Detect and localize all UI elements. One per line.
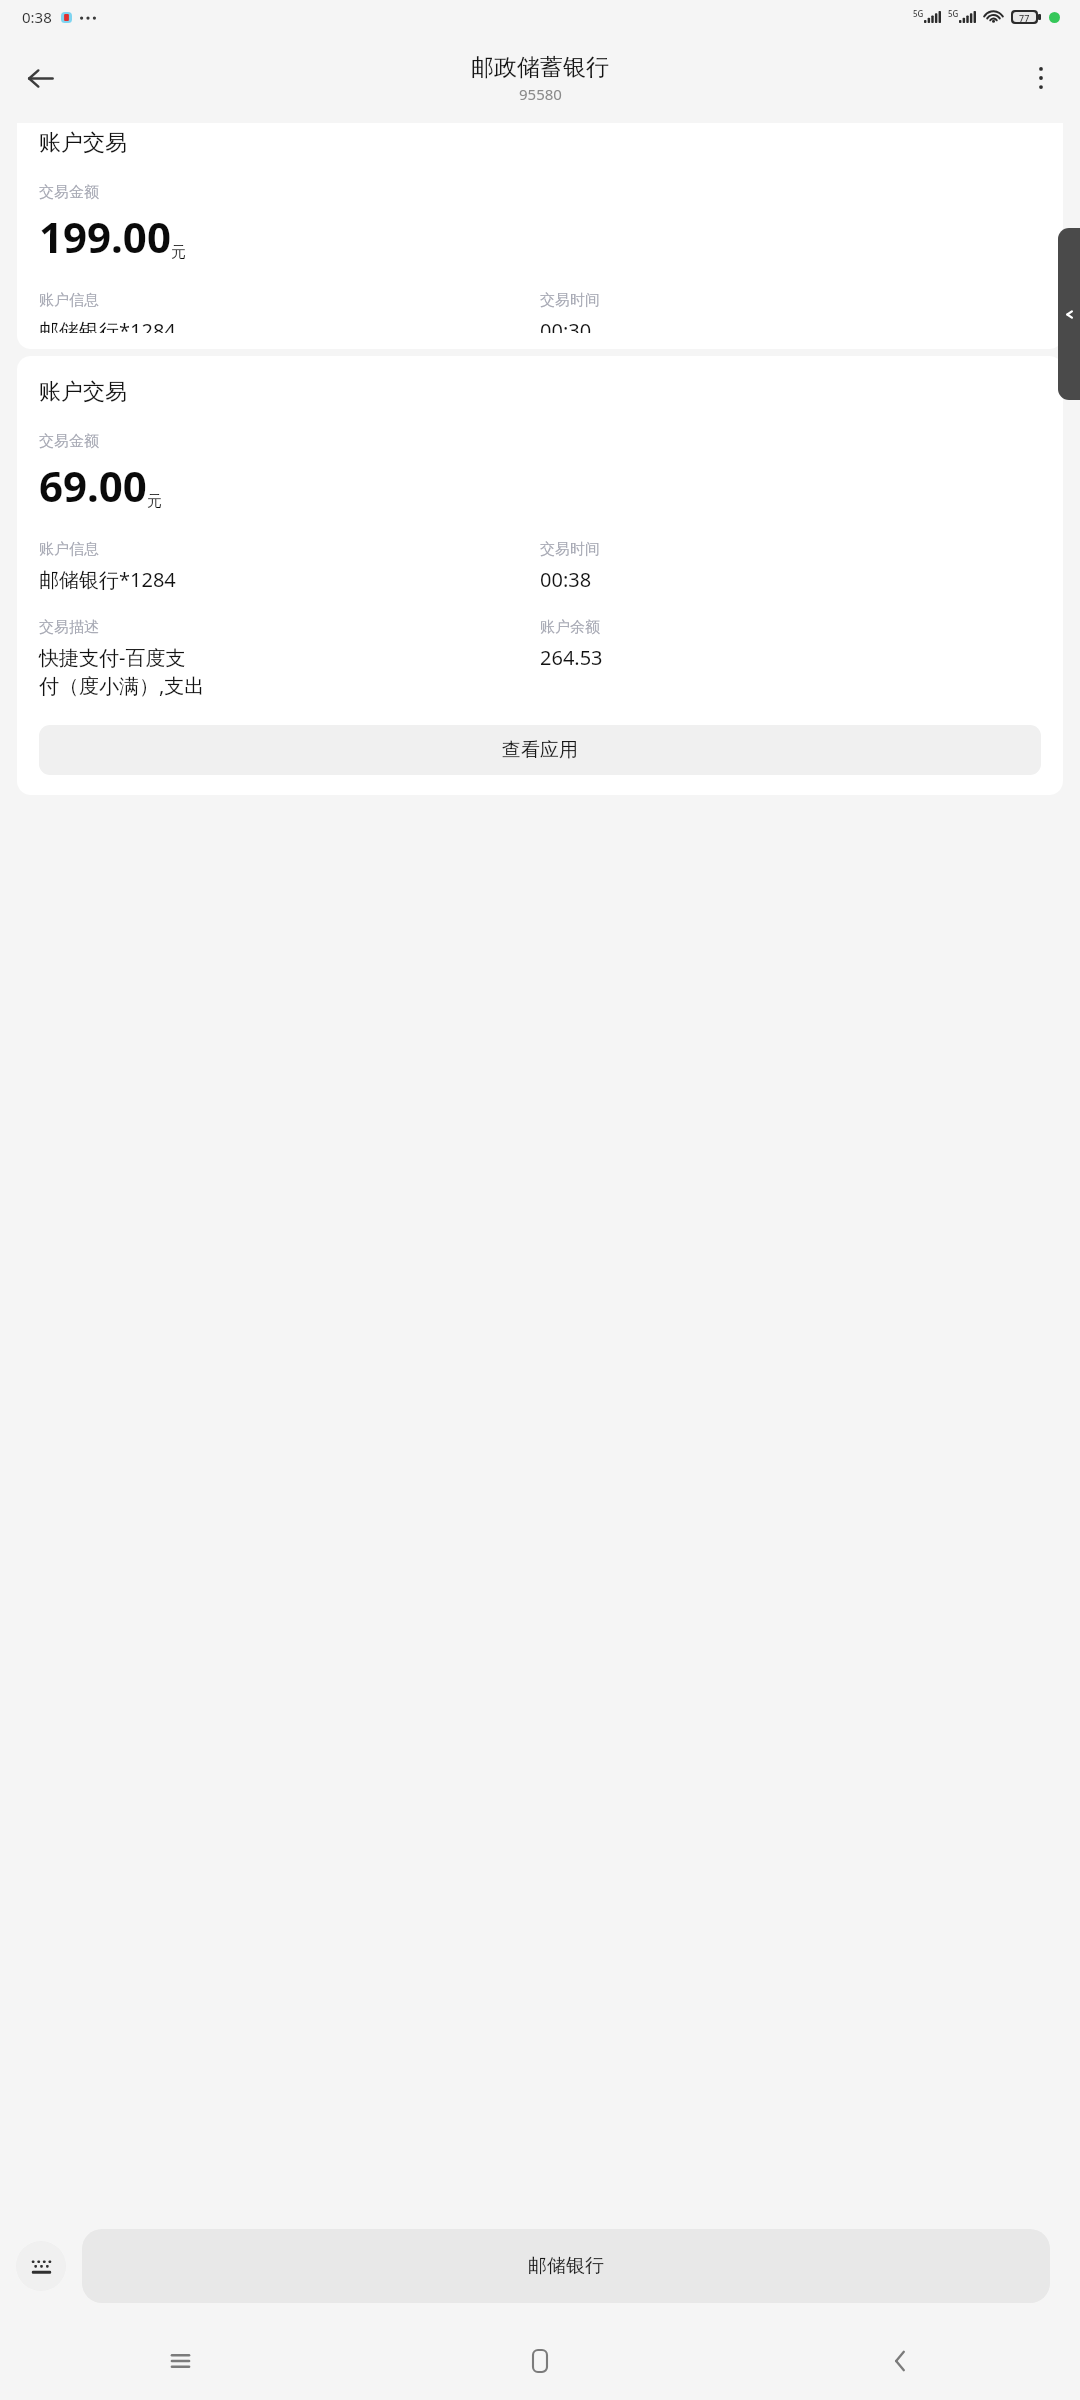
button[interactable]: Recents (0, 2322, 360, 2400)
staticText: 邮政储蓄银行 (471, 53, 609, 82)
staticText: 5G (948, 8, 959, 19)
staticText: 邮储银行*1284 (39, 317, 176, 333)
staticText: 69.00 (39, 457, 147, 514)
staticText: 账户交易 (39, 378, 127, 406)
staticText: 264.53 (540, 644, 603, 671)
staticText: 交易金额 (39, 183, 99, 202)
staticText: 00:38 (540, 566, 592, 593)
staticText: 77 (1019, 12, 1030, 22)
staticText: 账户交易 (39, 129, 127, 157)
staticText: 元 (147, 492, 162, 511)
staticText: 元 (171, 243, 186, 262)
button[interactable]: More options (1016, 53, 1066, 103)
staticText: 邮储银行*1284 (39, 566, 176, 593)
staticText: 交易金额 (39, 432, 99, 451)
staticText: 查看应用 (502, 738, 578, 762)
staticText: 00:30 (540, 317, 592, 333)
staticText: 5G (913, 8, 924, 19)
staticText: 199.00 (39, 208, 171, 265)
button[interactable]: 账户交易 (17, 123, 1063, 349)
button[interactable]: Back (720, 2322, 1080, 2400)
staticText: 交易描述 (39, 618, 99, 637)
button[interactable]: Home (360, 2322, 720, 2400)
button[interactable]: Expand panel (1058, 228, 1080, 400)
staticText: 0:38 (22, 7, 52, 27)
button[interactable]: Back (12, 50, 68, 106)
button[interactable]: 账户交易 (17, 356, 1063, 795)
staticText: 邮储银行 (528, 2254, 604, 2278)
staticText: 交易时间 (540, 291, 600, 310)
button[interactable]: 查看应用 (39, 725, 1041, 775)
staticText: 95580 (519, 84, 562, 104)
staticText: 账户信息 (39, 291, 99, 310)
button[interactable]: Keyboard (16, 2241, 66, 2291)
staticText: 快捷支付-百度支 付（度小满）,支出 (39, 644, 205, 699)
staticText: 账户信息 (39, 540, 99, 559)
staticText: 账户余额 (540, 618, 600, 637)
staticText: 交易时间 (540, 540, 600, 559)
button[interactable]: 邮储银行 (82, 2229, 1050, 2303)
